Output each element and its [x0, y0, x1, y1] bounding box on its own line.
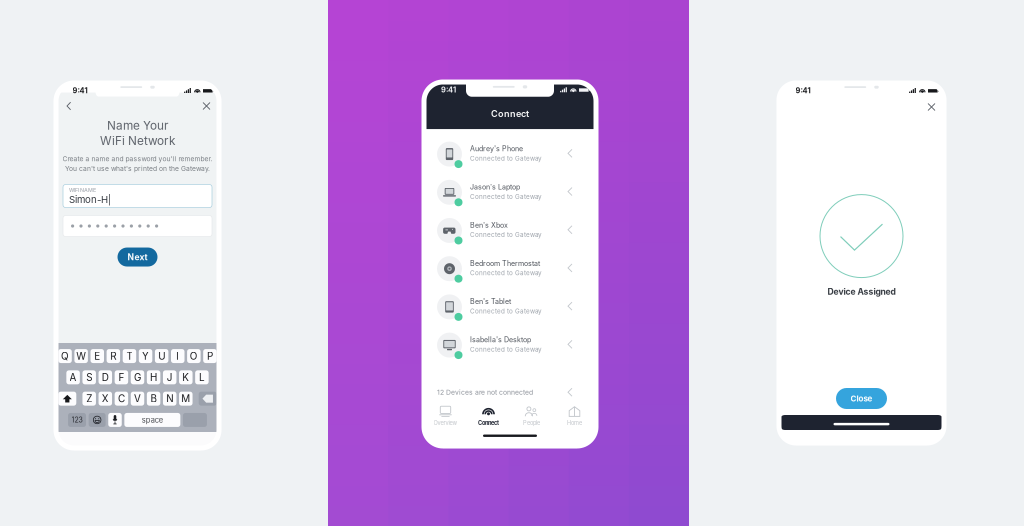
button[interactable]: Shift	[58, 392, 76, 406]
button[interactable]: K	[179, 370, 192, 384]
staticText: L	[199, 371, 205, 383]
staticText: Connect	[478, 420, 499, 426]
button[interactable]: T	[123, 349, 136, 363]
button[interactable]: W	[74, 349, 88, 363]
staticText: D	[102, 371, 109, 383]
button[interactable]: Delete	[199, 392, 217, 406]
button[interactable]: Home	[553, 402, 596, 430]
button[interactable]: Jason's Laptop	[424, 174, 596, 212]
button[interactable]: Overview	[424, 402, 467, 430]
button[interactable]: E	[90, 349, 104, 363]
staticText: R	[110, 350, 116, 362]
button[interactable]: U	[155, 349, 168, 363]
staticText: 9:41	[795, 86, 810, 95]
staticText: Overview	[433, 420, 457, 426]
button[interactable]: People	[510, 402, 553, 430]
button[interactable]	[108, 413, 122, 427]
staticText: W	[76, 350, 86, 362]
staticText: T	[126, 350, 132, 362]
button[interactable]: Bedroom Thermostat	[424, 250, 596, 288]
staticText: X	[102, 393, 109, 405]
staticText: A	[70, 371, 77, 383]
button[interactable]	[89, 413, 106, 427]
staticText: H	[150, 371, 157, 383]
button[interactable]: Isabella's Desktop	[424, 327, 596, 365]
button[interactable]: N	[163, 392, 176, 406]
button[interactable]: 123	[68, 413, 86, 427]
button[interactable]: L	[195, 370, 209, 384]
staticText: C	[118, 393, 125, 405]
button[interactable]: I	[171, 349, 184, 363]
staticText: K	[182, 371, 189, 383]
staticText: S	[86, 371, 92, 383]
button[interactable]: X	[99, 392, 112, 406]
staticText: Home	[567, 420, 582, 426]
staticText: F	[118, 371, 124, 383]
staticText: N	[166, 393, 173, 405]
button[interactable]: S	[82, 370, 96, 384]
staticText: Connected to Gateway	[470, 193, 542, 200]
staticText: Close	[850, 394, 872, 403]
staticText: Connected to Gateway	[470, 269, 542, 277]
button[interactable]: Z	[82, 392, 96, 406]
button[interactable]: Q	[58, 349, 72, 363]
staticText: Isabella's Desktop	[470, 335, 531, 344]
button[interactable]: F	[115, 370, 128, 384]
staticText: G	[134, 371, 141, 383]
staticText: I	[176, 350, 179, 362]
staticText: Simon-H|	[69, 194, 111, 205]
staticText: Device Assigned	[827, 287, 895, 297]
staticText: Z	[86, 393, 92, 405]
staticText: Ben's Tablet	[470, 297, 511, 306]
staticText: WIFI NAME	[69, 187, 96, 193]
button[interactable]: Close	[836, 388, 887, 409]
button[interactable]: A	[66, 370, 80, 384]
staticText: Create a name and password you'll rememb…	[62, 155, 212, 163]
staticText: Q	[61, 350, 69, 362]
staticText: People	[523, 420, 540, 426]
button[interactable]: Ben's Tablet	[424, 288, 596, 327]
button[interactable]: O	[187, 349, 201, 363]
button[interactable]: P	[203, 349, 217, 363]
button[interactable]: 12 Devices are not connected	[424, 381, 596, 403]
button[interactable]: B	[147, 392, 160, 406]
staticText: space	[142, 415, 163, 424]
staticText: J	[167, 371, 173, 383]
button[interactable]: Close	[194, 96, 219, 115]
button[interactable]: Close	[919, 97, 944, 116]
staticText: U	[158, 350, 165, 362]
button[interactable]: J	[163, 370, 176, 384]
button[interactable]: Next	[117, 247, 157, 266]
staticText: O	[190, 350, 198, 362]
staticText: 123	[71, 416, 82, 424]
button[interactable]: H	[147, 370, 160, 384]
button[interactable]: Connect	[467, 402, 510, 430]
button[interactable]: D	[98, 370, 112, 384]
staticText: You can't use what's printed on the Gate…	[65, 164, 210, 173]
staticText: Name Your	[107, 118, 168, 133]
staticText: Connected to Gateway	[470, 346, 542, 353]
button[interactable]: Ben's Xbox	[424, 212, 596, 250]
staticText: Jason's Laptop	[470, 183, 520, 191]
staticText: P	[207, 350, 213, 362]
staticText: Next	[127, 252, 147, 262]
button[interactable]: space	[124, 413, 180, 427]
button[interactable]: Audrey's Phone	[424, 136, 596, 174]
button[interactable]: Y	[139, 349, 152, 363]
button[interactable]: M	[179, 392, 193, 406]
staticText: 12 Devices are not connected	[437, 388, 533, 396]
staticText: Connect	[491, 108, 529, 119]
staticText: B	[151, 393, 157, 405]
staticText: Ben's Xbox	[470, 221, 508, 229]
button[interactable]: G	[131, 370, 144, 384]
staticText: 9:41	[72, 86, 87, 95]
staticText: E	[94, 350, 100, 362]
staticText: Audrey's Phone	[470, 144, 523, 153]
button[interactable]: V	[131, 392, 144, 406]
staticText: WiFi Network	[100, 134, 175, 148]
button[interactable]: Back	[56, 96, 80, 116]
button[interactable]: R	[107, 349, 120, 363]
staticText: Y	[142, 350, 149, 362]
button[interactable]: C	[115, 392, 128, 406]
staticText: 9:41	[441, 85, 456, 94]
